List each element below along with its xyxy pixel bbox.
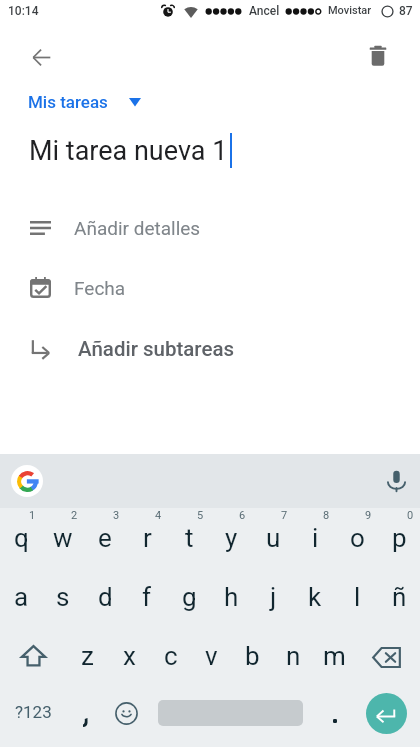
button[interactable]: Back: [23, 39, 59, 75]
button[interactable]: 7: [252, 509, 294, 569]
staticText: l: [354, 582, 361, 612]
staticText: q: [14, 523, 29, 553]
button[interactable]: 2: [42, 509, 84, 569]
button[interactable]: k: [294, 568, 336, 629]
staticText: a: [14, 582, 29, 612]
button[interactable]: d: [84, 568, 126, 629]
button[interactable]: n: [273, 627, 314, 687]
button[interactable]: s: [42, 568, 84, 629]
button[interactable]: 3: [84, 509, 126, 569]
button[interactable]: Enter: [355, 685, 420, 741]
button[interactable]: [63, 685, 105, 741]
button[interactable]: Mis tareas: [28, 92, 141, 112]
button[interactable]: a: [0, 568, 42, 629]
staticText: 5: [197, 509, 204, 522]
staticText: e: [98, 523, 112, 553]
button[interactable]: Emoji: [105, 685, 147, 741]
staticText: r: [143, 523, 152, 553]
button[interactable]: 8: [294, 509, 336, 569]
staticText: n: [286, 641, 301, 671]
staticText: t: [185, 523, 194, 553]
button[interactable]: f: [126, 568, 168, 629]
button[interactable]: h: [210, 568, 252, 629]
staticText: 10:14: [8, 4, 39, 18]
staticText: Fecha: [74, 277, 126, 299]
staticText: f: [142, 582, 152, 612]
staticText: j: [270, 582, 277, 612]
button[interactable]: Fecha: [0, 260, 420, 315]
staticText: w: [53, 523, 73, 553]
button[interactable]: v: [191, 627, 232, 687]
staticText: Añadir detalles: [74, 217, 201, 239]
button[interactable]: x: [108, 627, 150, 687]
staticText: z: [81, 641, 94, 671]
button[interactable]: z: [66, 627, 108, 687]
button[interactable]: Shift: [0, 627, 66, 687]
staticText: 7: [281, 509, 288, 522]
staticText: d: [98, 582, 113, 612]
button[interactable]: 5: [168, 509, 210, 569]
button[interactable]: 6: [210, 509, 252, 569]
button[interactable]: Delete: [360, 39, 396, 75]
staticText: 1: [29, 509, 36, 522]
staticText: Mis tareas: [28, 92, 108, 112]
staticText: s: [56, 582, 70, 612]
button[interactable]: c: [150, 627, 191, 687]
staticText: m: [323, 641, 346, 671]
staticText: y: [225, 523, 238, 553]
button[interactable]: l: [336, 568, 378, 629]
button[interactable]: Añadir detalles: [0, 200, 420, 255]
button[interactable]: m: [314, 627, 355, 687]
staticText: o: [350, 523, 365, 553]
button[interactable]: [315, 685, 355, 741]
staticText: Añadir subtareas: [78, 337, 234, 361]
staticText: ñ: [392, 582, 407, 612]
staticText: h: [224, 582, 239, 612]
staticText: 87: [399, 4, 413, 18]
button[interactable]: Google Search: [11, 465, 43, 497]
button[interactable]: 0: [378, 509, 420, 569]
staticText: 6: [239, 509, 246, 522]
staticText: v: [205, 641, 218, 671]
button[interactable]: ñ: [378, 568, 420, 629]
button[interactable]: Voice input: [378, 463, 414, 499]
button[interactable]: 4: [126, 509, 168, 569]
staticText: 4: [155, 509, 162, 522]
staticText: 8: [323, 509, 330, 522]
staticText: 3: [113, 509, 120, 522]
staticText: g: [182, 582, 197, 612]
staticText: 2: [71, 509, 78, 522]
button[interactable]: 1: [0, 509, 42, 569]
button[interactable]: Space: [147, 685, 315, 741]
staticText: Mi tarea nueva 1: [29, 135, 228, 167]
button[interactable]: Backspace: [355, 627, 420, 687]
staticText: b: [245, 641, 260, 671]
staticText: Movistar: [328, 4, 372, 17]
staticText: x: [123, 641, 136, 671]
staticText: p: [392, 523, 407, 553]
button[interactable]: Añadir subtareas: [0, 321, 420, 376]
button[interactable]: ?123: [0, 685, 63, 741]
staticText: i: [312, 523, 319, 553]
staticText: u: [266, 523, 281, 553]
staticText: c: [164, 641, 178, 671]
staticText: 0: [407, 509, 414, 522]
staticText: Ancel: [249, 4, 280, 18]
button[interactable]: j: [252, 568, 294, 629]
staticText: ?123: [15, 702, 52, 722]
staticText: k: [308, 582, 322, 612]
button[interactable]: 9: [336, 509, 378, 569]
staticText: 9: [365, 509, 372, 522]
button[interactable]: g: [168, 568, 210, 629]
button[interactable]: b: [232, 627, 273, 687]
